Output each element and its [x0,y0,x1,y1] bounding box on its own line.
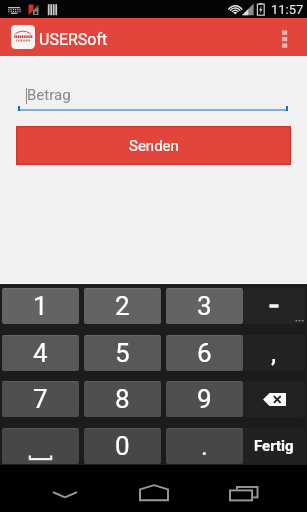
staticText: 7 [33,384,48,414]
button[interactable]: Home [126,465,182,512]
staticText: , [271,338,277,368]
staticText: Senden [129,137,179,155]
button[interactable]: Recent apps [215,465,271,512]
button[interactable]: Backspace [243,381,305,417]
button[interactable]: 7 [2,381,79,417]
staticText: Betrag [27,86,71,104]
staticText: Fertig [254,437,294,455]
button[interactable]: 5 [84,335,161,371]
button[interactable]: 3 [166,288,243,324]
staticText: 1 [33,291,48,321]
button[interactable]: Hide keyboard [38,465,92,512]
staticText: 3 [197,291,212,321]
staticText: . [201,431,208,461]
button[interactable]: . [166,428,243,464]
button[interactable]: 8 [84,381,161,417]
button[interactable]: Senden [16,126,291,165]
button[interactable]: 0 [84,428,161,464]
button[interactable]: Comma [243,335,305,371]
staticText: 0 [115,431,130,461]
button[interactable]: More options [269,18,300,56]
button[interactable]: Fertig [243,428,305,464]
staticText: 11:57 [271,2,304,17]
button[interactable]: 1 [2,288,79,324]
staticText: 2 [115,291,130,321]
button[interactable]: Minus [243,288,305,324]
staticText: 5 [115,338,130,368]
staticText: 9 [197,384,212,414]
staticText: USERSoft [39,30,108,49]
button[interactable]: Betrag [18,84,288,141]
button[interactable]: 2 [84,288,161,324]
staticText: 4 [33,338,48,368]
staticText: 8 [115,384,130,414]
button[interactable]: 4 [2,335,79,371]
button[interactable]: 9 [166,381,243,417]
staticText: 6 [197,338,212,368]
button[interactable]: 6 [166,335,243,371]
button[interactable]: Space [2,428,79,464]
